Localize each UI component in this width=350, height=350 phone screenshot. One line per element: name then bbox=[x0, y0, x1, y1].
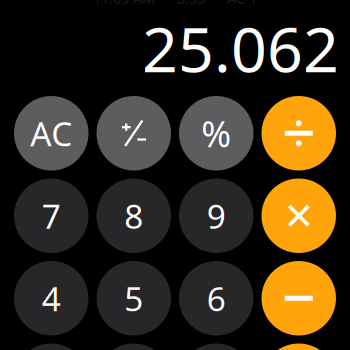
button[interactable]: Multiply bbox=[261, 178, 336, 253]
button[interactable]: Plus bbox=[261, 343, 336, 350]
staticText: 7 bbox=[42, 194, 61, 238]
button[interactable]: AC bbox=[14, 96, 88, 170]
button[interactable]: 5 bbox=[96, 261, 171, 335]
button[interactable]: Minus bbox=[261, 261, 336, 335]
button[interactable]: 1 bbox=[14, 343, 88, 350]
staticText: 6 bbox=[207, 276, 226, 320]
button[interactable]: 4 bbox=[14, 261, 88, 335]
staticText: 9 bbox=[207, 194, 226, 238]
button[interactable]: 6 bbox=[179, 261, 253, 335]
button[interactable]: Divide bbox=[261, 96, 336, 170]
staticText: 8 bbox=[124, 194, 143, 238]
staticText: AC bbox=[30, 111, 72, 155]
staticText: 5 bbox=[124, 276, 143, 320]
button[interactable]: Plus or minus bbox=[96, 96, 171, 170]
staticText: 25.062 bbox=[142, 6, 339, 90]
staticText: % bbox=[201, 109, 231, 157]
button[interactable]: 3 bbox=[179, 343, 253, 350]
button[interactable]: 7 bbox=[14, 178, 88, 253]
button[interactable]: % bbox=[179, 96, 253, 170]
button[interactable]: 2 bbox=[96, 343, 171, 350]
staticText: 4 bbox=[42, 276, 61, 320]
button[interactable]: 8 bbox=[96, 178, 171, 253]
button[interactable]: 9 bbox=[179, 178, 253, 253]
staticText: 11:05 AM • 3:35 • AC 1 bbox=[93, 0, 257, 8]
